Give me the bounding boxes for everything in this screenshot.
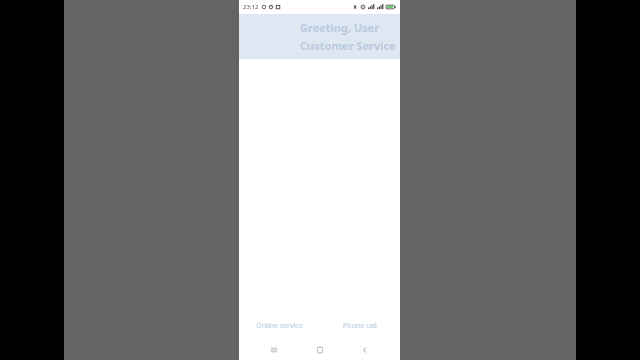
staticText: Online service xyxy=(256,321,303,331)
button[interactable]: Back xyxy=(355,340,375,360)
staticText: Customer Service xyxy=(300,38,396,53)
button[interactable]: Recent apps xyxy=(264,340,284,360)
button[interactable]: Home xyxy=(310,340,330,360)
staticText: Greeting, User xyxy=(300,20,380,35)
button[interactable]: Online service xyxy=(239,312,319,340)
button[interactable]: Phone call xyxy=(319,312,400,340)
staticText: 23:12 xyxy=(243,3,259,11)
staticText: Phone call xyxy=(343,321,377,331)
